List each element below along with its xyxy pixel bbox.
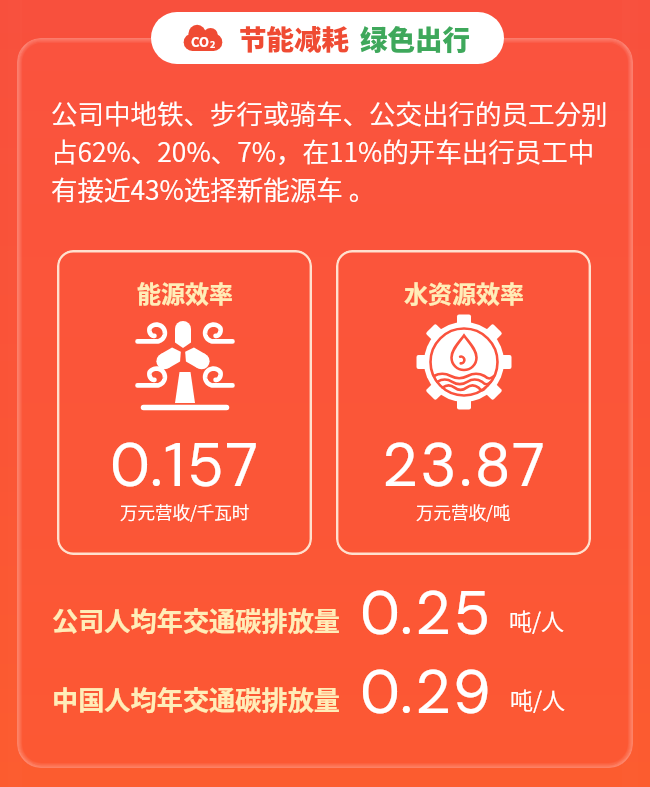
button[interactable]: CO2 [151, 12, 504, 64]
staticText: 水资源效率 [404, 275, 524, 310]
button[interactable]: 水资源效率 [336, 250, 591, 555]
other: Water efficiency [416, 314, 512, 410]
staticText: 0.157 [110, 425, 261, 504]
staticText: 有接近43%选择新能源车 。 [51, 169, 376, 207]
staticText: 能源效率 [137, 275, 233, 310]
staticText: 中国人均年交通碳排放量 [52, 680, 341, 718]
staticText: 公司中地铁、步行或骑车、公交出行的员工分别 [51, 93, 608, 131]
staticText: 绿色出行 [360, 18, 470, 58]
staticText: 节能减耗 [239, 18, 349, 58]
staticText: 吨/人 [510, 682, 566, 715]
button[interactable]: 公司人均年交通碳排放量 [52, 580, 600, 659]
staticText: 23.87 [382, 425, 548, 504]
staticText: 公司人均年交通碳排放量 [52, 601, 341, 639]
staticText: 万元营收/吨 [416, 499, 511, 524]
staticText: CO [191, 32, 210, 51]
staticText: 2 [210, 38, 216, 51]
other: CO2 [182, 24, 224, 52]
staticText: 0.25 [360, 573, 493, 652]
button[interactable]: 能源效率 [57, 250, 312, 555]
button[interactable]: 中国人均年交通碳排放量 [52, 659, 600, 738]
staticText: 吨/人 [509, 603, 565, 636]
staticText: 占62%、20%、7%，在11%的开车出行员工中 [51, 131, 595, 169]
other: Wind turbine [141, 320, 229, 404]
staticText: 0.29 [360, 652, 494, 731]
staticText: 万元营收/千瓦时 [120, 499, 250, 524]
